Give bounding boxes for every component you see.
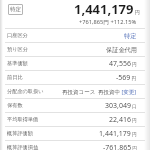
- staticText: 22,416 円: [109, 115, 137, 125]
- staticText: 特定: [124, 32, 137, 40]
- staticText: 保証金代用: [106, 46, 137, 54]
- staticText: 前日比: [7, 74, 23, 81]
- staticText: 1,441,179 円: [74, 0, 140, 18]
- button[interactable]: 平均取得単価: [0, 113, 150, 127]
- button[interactable]: 分配金の取扱い: [0, 85, 150, 99]
- staticText: 保有数: [7, 102, 23, 109]
- button[interactable]: 概算評価額: [0, 127, 150, 141]
- staticText: 特定: [10, 6, 21, 13]
- staticText: -569 円: [116, 73, 137, 83]
- button[interactable]: 預り区分: [0, 43, 150, 57]
- staticText: +761,865円 +112.15%: [79, 18, 137, 26]
- staticText: 再投資コース 再投資中 [変更]: [62, 88, 137, 96]
- staticText: 口座区分: [7, 32, 28, 39]
- staticText: 基準価額: [7, 60, 28, 67]
- staticText: -761,865 円: [103, 143, 137, 150]
- staticText: 預り区分: [7, 46, 28, 53]
- staticText: 分配金の取扱い: [7, 88, 44, 95]
- staticText: 47,556 円: [109, 59, 137, 69]
- button[interactable]: 前日比: [0, 71, 150, 85]
- staticText: 1,441,179 円: [99, 129, 137, 139]
- button[interactable]: 基準価額: [0, 57, 150, 71]
- button[interactable]: 保有数: [0, 99, 150, 113]
- button[interactable]: 特定: [10, 6, 21, 13]
- staticText: 概算評価損益: [7, 144, 39, 150]
- staticText: 概算評価額: [7, 130, 33, 137]
- button[interactable]: 概算評価損益: [0, 141, 150, 150]
- button[interactable]: 口座区分: [0, 29, 150, 43]
- staticText: 303,049 口: [105, 101, 137, 111]
- staticText: 平均取得単価: [7, 116, 39, 123]
